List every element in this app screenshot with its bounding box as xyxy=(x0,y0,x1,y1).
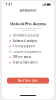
staticText: in a single subscription. xyxy=(20,29,35,31)
staticText: Team collaboration xyxy=(13,61,38,64)
staticText: Cancel anytime · Terms apply xyxy=(18,86,37,88)
staticText: Unlimited projects xyxy=(13,34,39,37)
staticText: Subscription xyxy=(19,9,36,12)
staticText: Priority support xyxy=(13,44,35,48)
staticText: 9:41 xyxy=(5,3,12,6)
staticText: Start free trial xyxy=(18,79,38,82)
staticText: Advanced analytics xyxy=(13,39,37,43)
staticText: Custom integrations xyxy=(13,50,41,53)
staticText: Everything you need to get more done, xyxy=(15,28,41,29)
staticText: Unlock Pro Access xyxy=(10,21,46,26)
staticText: Offline access xyxy=(13,55,31,59)
button[interactable]: Start free trial xyxy=(7,78,49,84)
